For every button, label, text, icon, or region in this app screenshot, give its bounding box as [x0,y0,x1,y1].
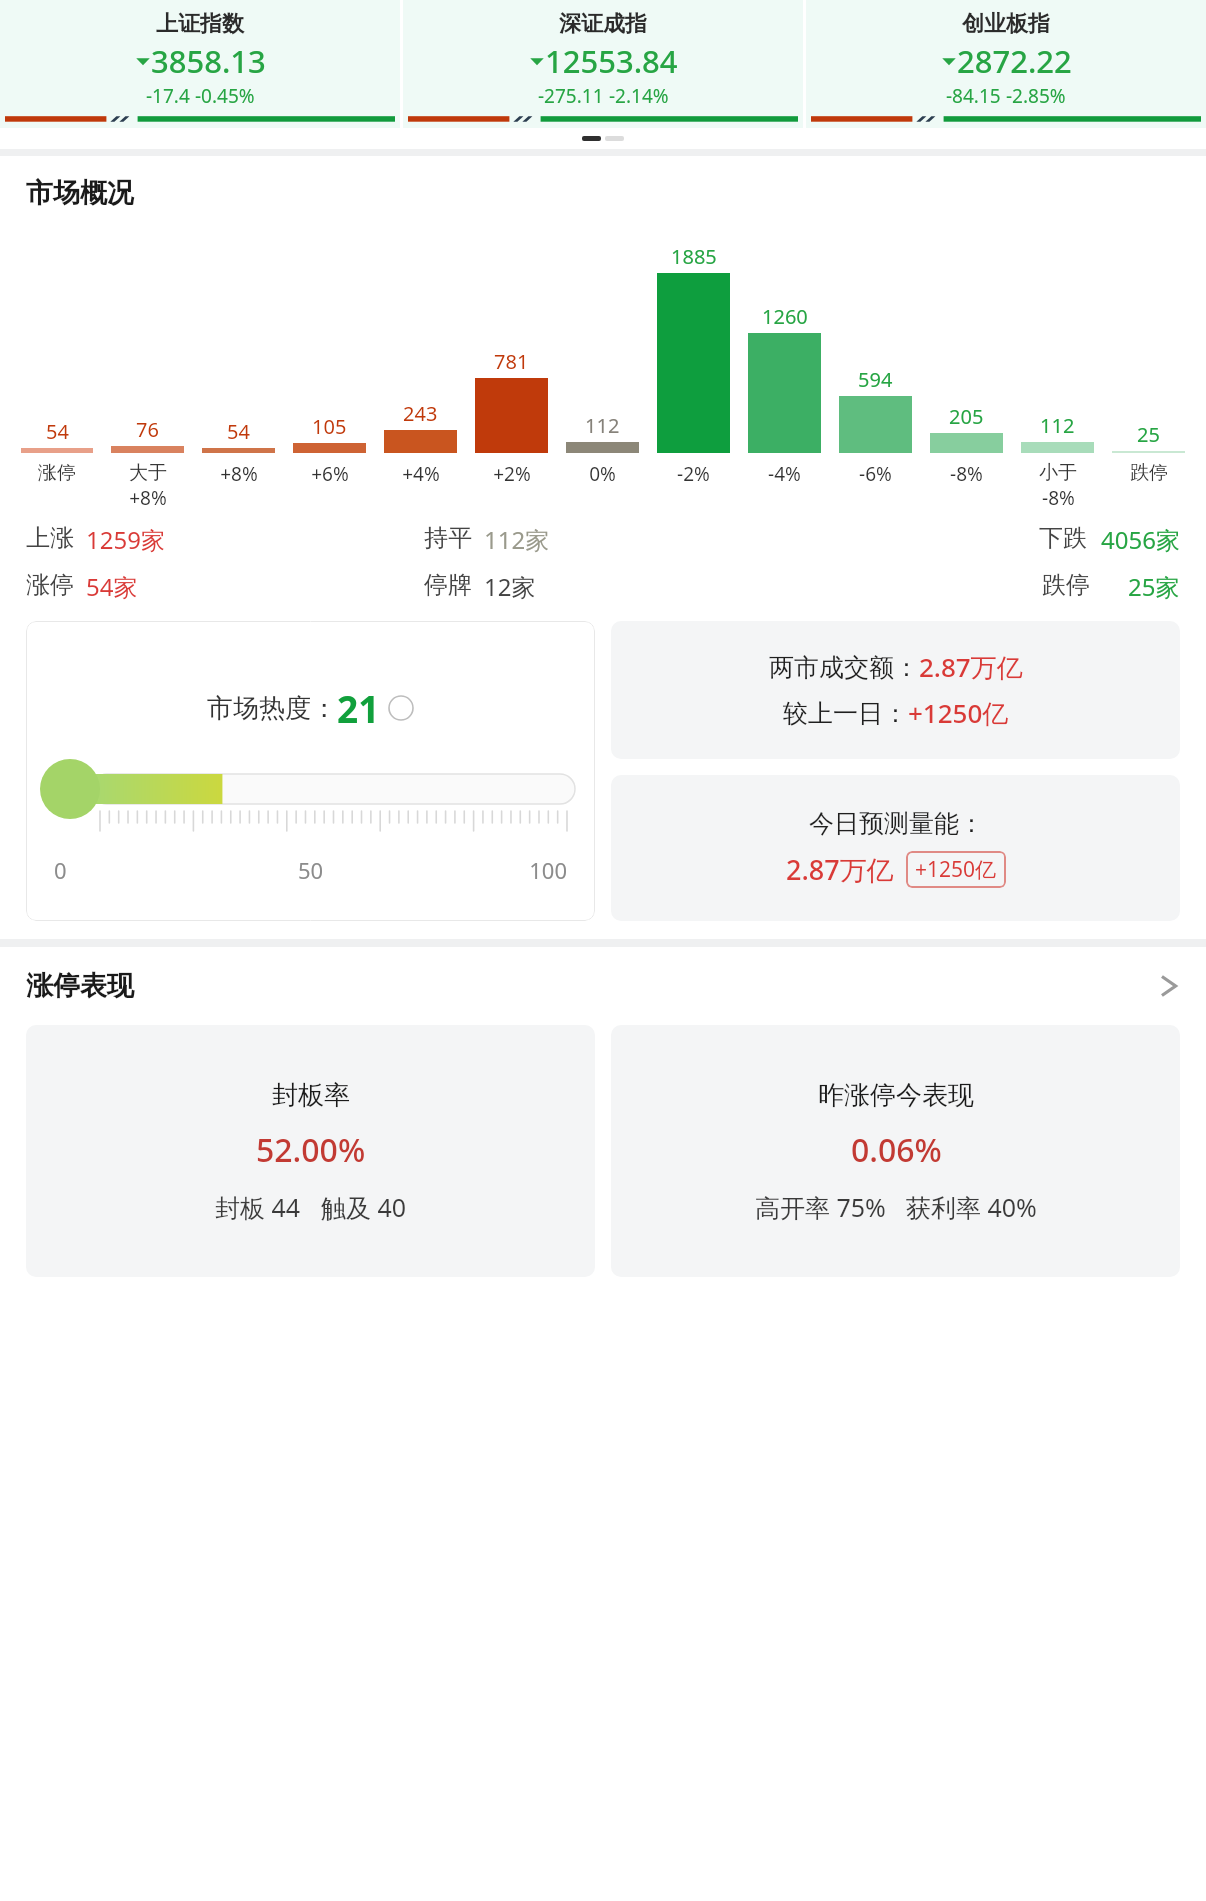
staticText: 获利率 40% [906,1190,1037,1224]
staticText: 12553.84 [545,40,678,82]
staticText: 今日预测量能： [809,808,984,839]
staticText: 0% [589,461,616,487]
button[interactable]: 今日预测量能： [611,775,1180,921]
staticText: 两市成交额： [769,652,919,683]
staticText: 封板 44 [215,1190,301,1224]
staticText: 594 [858,366,893,393]
staticText: +6% [311,461,349,487]
staticText: 12家 [484,570,536,603]
button[interactable]: 深证成指 [403,0,803,128]
staticText: 跌停 [1042,570,1090,600]
staticText: 54家 [86,570,138,603]
staticText: +4% [402,461,440,487]
staticText: 1885 [671,243,717,270]
staticText: 1260 [762,303,808,330]
staticText: 小于 [1039,461,1077,485]
staticText: -8% [1042,485,1075,509]
button[interactable]: 105 [284,228,375,509]
staticText: 市场概况 [26,176,134,210]
staticText: 243 [403,400,438,427]
staticText: 54 [46,418,69,445]
staticText: 跌停 [1130,461,1168,485]
staticText: 触及 40 [321,1190,407,1224]
staticText: 2.87万亿 [786,851,894,888]
staticText: +8% [129,485,167,509]
staticText: 0 [54,855,225,885]
button[interactable]: 781 [466,228,557,509]
button[interactable]: 帮助 [388,695,414,721]
staticText: 52.00% [256,1128,366,1172]
button[interactable]: 昨涨停今表现 [611,1025,1180,1277]
button[interactable]: 205 [921,228,1012,509]
staticText: 上证指数 [156,10,244,38]
staticText: 25 [1137,421,1160,448]
staticText: 21 [337,683,380,733]
staticText: 涨停 [38,461,76,485]
staticText: 上涨 [26,523,74,553]
button[interactable]: 112 [1012,228,1103,509]
staticText: 112 [585,412,620,439]
button[interactable]: 涨停表现 [0,969,1206,1003]
staticText: 高开率 75% [755,1190,886,1224]
staticText: 2.87万亿 [919,649,1023,685]
staticText: 封板率 [272,1079,350,1112]
staticText: 4056家 [1101,523,1180,556]
staticText: -2.85% [1006,83,1066,109]
staticText: 涨停表现 [26,969,134,1003]
other: 更多 [1158,969,1180,1003]
button[interactable]: 243 [375,228,466,509]
staticText: -275.11 [538,83,604,109]
button[interactable]: 两市成交额： [611,621,1180,759]
staticText: 昨涨停今表现 [818,1079,974,1112]
button[interactable]: 1260 [739,228,830,509]
staticText: 1259家 [86,523,165,556]
staticText: 创业板指 [962,10,1050,38]
button[interactable]: 创业板指 [806,0,1206,128]
staticText: 112 [1040,412,1075,439]
button[interactable]: 54 [12,228,102,509]
staticText: 76 [136,416,159,443]
staticText: -2.14% [609,83,669,109]
staticText: -6% [859,461,892,487]
staticText: 较上一日： [783,698,908,729]
button[interactable]: 封板率 [26,1025,595,1277]
button[interactable]: 市场热度： [26,621,595,921]
staticText: 100 [396,855,567,885]
button[interactable]: 25 [1103,228,1194,509]
staticText: 深证成指 [559,10,647,38]
staticText: -2% [677,461,710,487]
staticText: 50 [225,855,396,885]
staticText: 市场热度： [207,692,337,725]
staticText: 25家 [1128,570,1180,603]
staticText: +2% [493,461,531,487]
staticText: -8% [950,461,983,487]
staticText: -0.45% [195,83,255,109]
staticText: 涨停 [26,570,74,600]
staticText: 下跌 [1039,523,1087,553]
staticText: 2872.22 [957,40,1072,82]
staticText: 781 [494,348,529,375]
button[interactable]: 54 [193,228,284,509]
staticText: 大于 [129,461,167,485]
staticText: 3858.13 [151,40,266,82]
staticText: 持平 [424,523,472,553]
staticText: -17.4 [146,83,190,109]
staticText: 54 [227,418,250,445]
button[interactable]: 1885 [648,228,739,509]
staticText: +1250亿 [915,855,997,884]
staticText: 112家 [484,523,550,556]
button[interactable]: 76 [102,228,193,509]
staticText: 105 [312,413,347,440]
staticText: +8% [220,461,258,487]
button[interactable]: 594 [830,228,921,509]
staticText: 停牌 [424,570,472,600]
staticText: +1250亿 [908,695,1009,731]
staticText: -4% [768,461,801,487]
staticText: 0.06% [851,1128,942,1172]
button[interactable]: 112 [557,228,648,509]
button[interactable]: 上证指数 [0,0,400,128]
staticText: -84.15 [946,83,1001,109]
staticText: 205 [949,403,984,430]
